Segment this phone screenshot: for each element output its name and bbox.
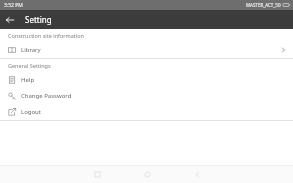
staticText: Help — [21, 76, 35, 84]
button[interactable]: Recent apps — [85, 166, 109, 183]
staticText: General Settings — [8, 62, 51, 69]
button[interactable]: Home — [135, 166, 159, 183]
staticText: Setting — [25, 14, 52, 25]
staticText: Library — [21, 46, 41, 54]
button[interactable]: Change Password — [0, 88, 293, 104]
button[interactable]: Back — [0, 10, 19, 29]
staticText: Change Password — [21, 92, 72, 100]
staticText: MASTER_ACT_50 — [246, 2, 281, 8]
button[interactable]: Library — [0, 42, 293, 58]
staticText: Construction site information — [8, 32, 84, 39]
button[interactable]: Help — [0, 72, 293, 88]
button[interactable]: Logout — [0, 104, 293, 120]
staticText: 3:52 PM — [4, 2, 23, 9]
staticText: Logout — [21, 108, 41, 116]
